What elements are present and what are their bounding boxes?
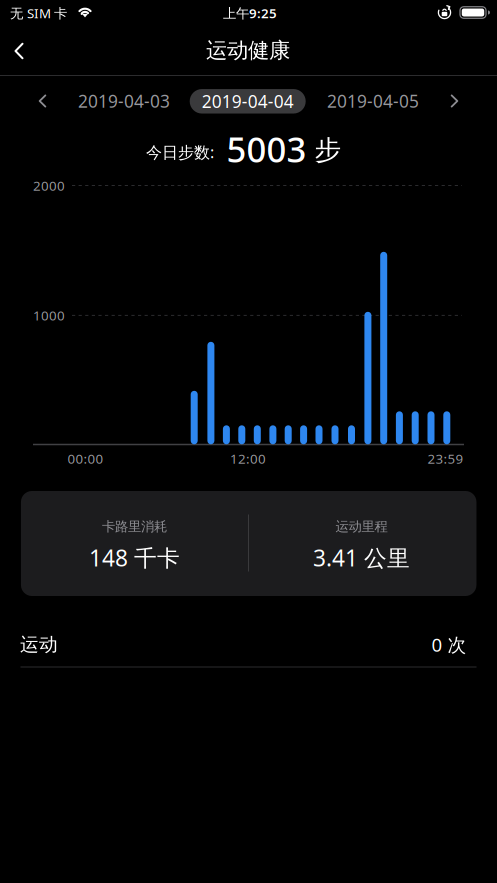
staticText: 2019-04-03 bbox=[78, 89, 170, 112]
staticText: 运动 bbox=[20, 633, 58, 656]
staticText: 无 SIM 卡 bbox=[10, 4, 67, 22]
button[interactable]: 运动 bbox=[20, 622, 477, 666]
staticText: 上午9:25 bbox=[223, 4, 277, 22]
staticText: 12:00 bbox=[230, 450, 266, 467]
staticText: 3.41 公里 bbox=[313, 542, 410, 573]
staticText: 1000 bbox=[33, 306, 65, 324]
staticText: 运动健康 bbox=[206, 37, 290, 64]
staticText: 今日步数: bbox=[146, 141, 214, 163]
staticText: 2000 bbox=[33, 177, 65, 194]
staticText: 运动里程 bbox=[335, 518, 387, 535]
staticText: 0 次 bbox=[431, 632, 466, 657]
staticText: 00:00 bbox=[67, 450, 103, 467]
staticText: 2019-04-05 bbox=[327, 89, 419, 112]
staticText: 2019-04-04 bbox=[202, 90, 294, 113]
button[interactable]: Earlier dates bbox=[29, 88, 55, 114]
staticText: 148 千卡 bbox=[89, 542, 180, 573]
button[interactable]: Later dates bbox=[441, 88, 467, 114]
staticText: 23:59 bbox=[427, 450, 463, 467]
button[interactable]: 2019-04-03 bbox=[78, 89, 170, 112]
button[interactable]: Back bbox=[4, 33, 34, 69]
staticText: 步 bbox=[314, 134, 341, 166]
button[interactable]: 2019-04-04 bbox=[190, 89, 306, 113]
staticText: 卡路里消耗 bbox=[102, 518, 167, 535]
button[interactable]: 2019-04-05 bbox=[327, 89, 419, 112]
staticText: 5003 bbox=[226, 126, 306, 172]
